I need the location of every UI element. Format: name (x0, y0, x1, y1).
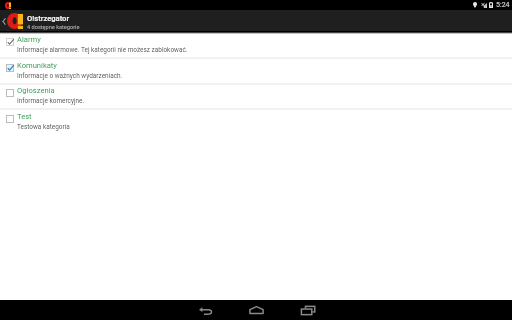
button[interactable]: Recent apps (282, 300, 333, 320)
staticText: Alarmy (17, 35, 41, 44)
staticText: Test (17, 112, 32, 121)
staticText: Ogłoszenia (17, 86, 55, 95)
staticText: Informacje komercyjne. (17, 97, 85, 105)
button[interactable]: Back (180, 300, 231, 320)
staticText: Testowa kategoria (17, 123, 70, 131)
button[interactable]: Ogłoszenia (0, 82, 512, 107)
staticText: Informacje o ważnych wydarzeniach. (17, 72, 123, 80)
staticText: 5:24 (496, 1, 510, 9)
button[interactable]: Home (231, 300, 282, 320)
staticText: Informacje alarmowe. Tej kategorii nie m… (17, 46, 188, 54)
staticText: Komunikaty (17, 61, 57, 70)
staticText: 4 dostępne kategorie (27, 24, 80, 31)
button[interactable]: Komunikaty (0, 57, 512, 82)
staticText: O!strzegator (27, 14, 70, 23)
button[interactable]: Test (0, 108, 512, 133)
button[interactable]: Navigate up (0, 13, 23, 29)
button[interactable]: Alarmy (0, 31, 512, 56)
